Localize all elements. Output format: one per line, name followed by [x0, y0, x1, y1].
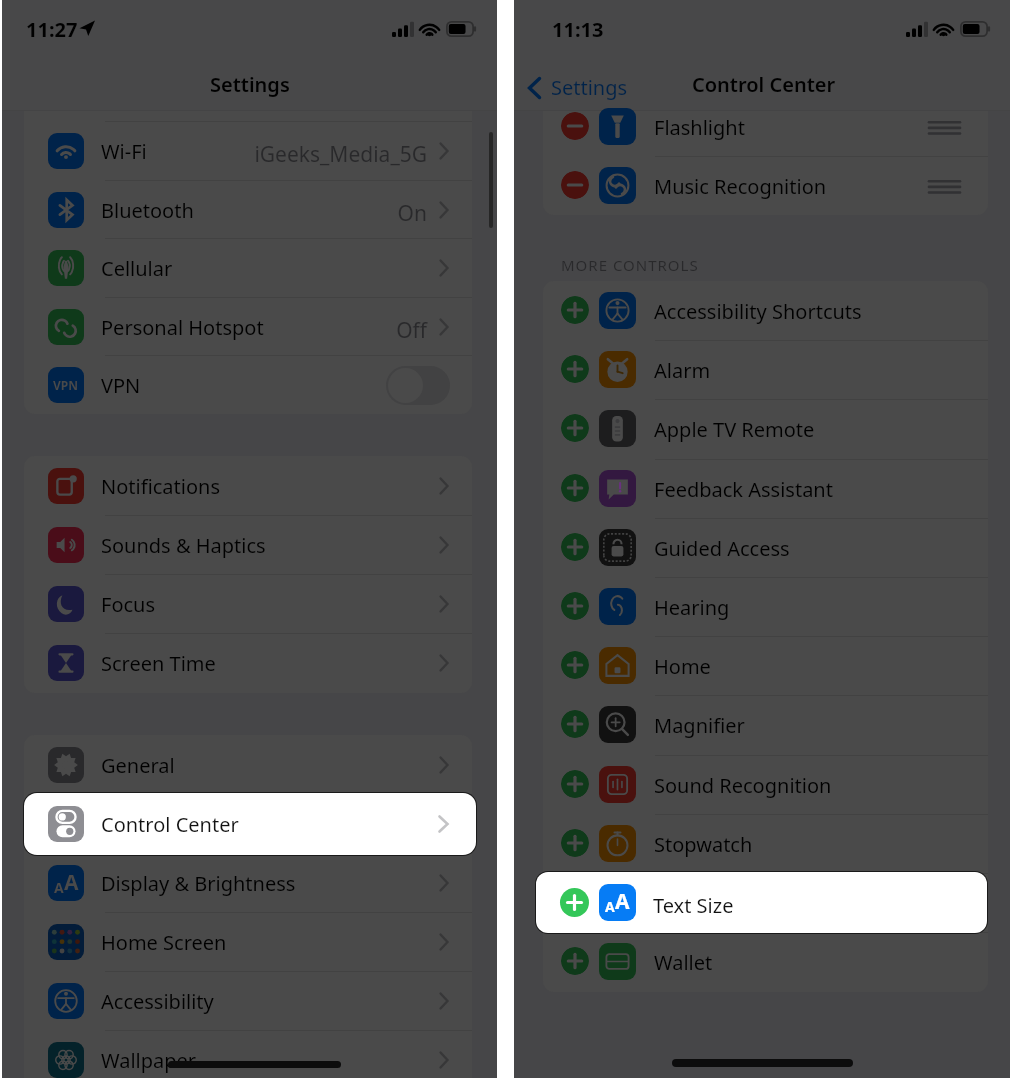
staticText: Apple TV Remote — [654, 416, 815, 443]
staticText: Bluetooth — [101, 197, 194, 224]
staticText: Focus — [101, 591, 156, 618]
staticText: Hearing — [654, 594, 730, 621]
staticText: Cellular — [101, 255, 173, 282]
button[interactable]: Add Home — [561, 651, 589, 679]
button[interactable]: Remove Flashlight — [543, 97, 988, 156]
button[interactable]: Wallpaper — [24, 1030, 472, 1078]
button[interactable]: Add Accessibility Shortcuts — [561, 296, 589, 324]
staticText: A — [605, 897, 615, 916]
button[interactable]: Add Alarm — [543, 340, 988, 399]
staticText: Stopwatch — [654, 831, 753, 858]
staticText: Off — [107, 316, 427, 345]
staticText: Control Center — [692, 71, 836, 98]
button[interactable]: Add Apple TV Remote — [543, 399, 988, 458]
staticText: Sounds & Haptics — [101, 532, 266, 559]
button[interactable]: Wi-Fi — [24, 121, 472, 180]
button[interactable]: A — [24, 853, 472, 912]
staticText: Notifications — [101, 473, 220, 500]
staticText: 11:13 — [552, 16, 604, 43]
staticText: Feedback Assistant — [654, 476, 833, 503]
button[interactable]: Remove Flashlight — [561, 112, 589, 140]
button[interactable]: Reorder — [921, 172, 968, 203]
button[interactable]: Focus — [24, 574, 472, 633]
staticText: Alarm — [654, 357, 711, 384]
staticText: Accessibility Shortcuts — [654, 298, 862, 325]
other: Back — [528, 77, 541, 99]
staticText: General — [101, 752, 175, 779]
staticText: Accessibility — [101, 988, 214, 1015]
staticText: Display & Brightness — [101, 870, 296, 897]
button[interactable]: Back — [524, 70, 632, 105]
button[interactable]: Add Stopwatch — [561, 829, 589, 857]
staticText: Home Screen — [101, 929, 227, 956]
staticText: Wallet — [654, 949, 713, 976]
button[interactable]: Add Sound Recognition — [543, 755, 988, 814]
staticText: Home — [654, 653, 711, 680]
button[interactable]: Home Screen — [24, 912, 472, 971]
staticText: On — [107, 199, 427, 228]
button[interactable]: Add Feedback Assistant — [543, 459, 988, 518]
staticText: Control Center — [101, 811, 239, 838]
staticText: iGeeks_Media_5G — [107, 140, 427, 169]
button[interactable]: Add Wallet — [543, 932, 988, 991]
button[interactable]: Add Apple TV Remote — [561, 414, 589, 442]
button[interactable]: Add Guided Access — [543, 518, 988, 577]
button[interactable]: Remove Music Recognition — [561, 171, 589, 199]
staticText: Guided Access — [654, 535, 790, 562]
button[interactable]: Add Guided Access — [561, 533, 589, 561]
button[interactable]: General — [24, 735, 472, 794]
button[interactable]: Accessibility — [24, 971, 472, 1030]
staticText: MORE CONTROLS — [561, 255, 699, 275]
button[interactable]: Add Home — [543, 636, 988, 695]
button[interactable]: Add Hearing — [543, 577, 988, 636]
staticText: 11:27 — [26, 16, 78, 43]
staticText: Settings — [210, 71, 290, 98]
staticText: Personal Hotspot — [101, 314, 264, 341]
button[interactable]: Add Hearing — [561, 592, 589, 620]
staticText: A — [64, 868, 79, 897]
button[interactable]: Add Accessibility Shortcuts — [543, 281, 988, 340]
staticText: VPN — [101, 372, 141, 399]
staticText: Sound Recognition — [654, 772, 832, 799]
staticText: Screen Time — [101, 650, 216, 677]
button[interactable]: Add Magnifier — [543, 695, 988, 754]
button[interactable]: Reorder — [921, 113, 968, 144]
button[interactable]: Personal Hotspot — [24, 297, 472, 356]
button[interactable]: VPN — [24, 355, 472, 414]
button[interactable]: Add Magnifier — [561, 710, 589, 738]
staticText: Text Size — [653, 892, 734, 919]
button[interactable]: Control Center — [24, 793, 476, 855]
button[interactable]: Add Wallet — [561, 947, 589, 975]
button[interactable]: Add Stopwatch — [543, 814, 988, 873]
staticText: Flashlight — [654, 114, 745, 141]
staticText: Wallpaper — [101, 1047, 197, 1074]
button[interactable]: Screen Time — [24, 633, 472, 692]
staticText: Settings — [551, 74, 628, 101]
button[interactable]: Sounds & Haptics — [24, 515, 472, 574]
staticText: A — [615, 887, 630, 916]
button[interactable]: Add Alarm — [561, 355, 589, 383]
button[interactable]: Remove Music Recognition — [543, 156, 988, 215]
button[interactable]: Cellular — [24, 238, 472, 297]
staticText: VPN — [53, 377, 79, 393]
button[interactable]: Bluetooth — [24, 180, 472, 239]
button[interactable]: Add Feedback Assistant — [561, 474, 589, 502]
button[interactable]: A — [536, 872, 987, 933]
staticText: Wi-Fi — [101, 138, 147, 165]
button[interactable]: Notifications — [24, 456, 472, 515]
staticText: A — [54, 878, 64, 897]
button[interactable]: Add Sound Recognition — [561, 770, 589, 798]
staticText: Magnifier — [654, 712, 745, 739]
staticText: Music Recognition — [654, 173, 827, 200]
button[interactable]: VPN toggle — [386, 366, 450, 405]
